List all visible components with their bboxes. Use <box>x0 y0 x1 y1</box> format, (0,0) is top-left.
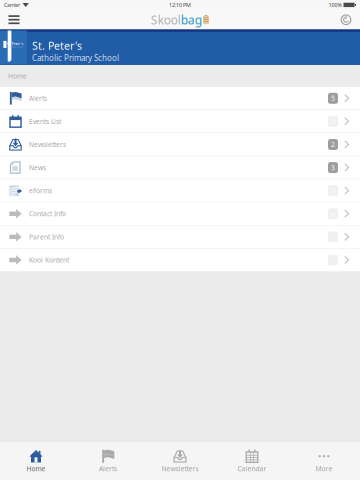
button[interactable]: Home <box>0 442 72 480</box>
button[interactable]: Contact Info <box>0 202 360 225</box>
staticText: 100% <box>328 1 341 9</box>
staticText: Parent Info <box>29 232 64 241</box>
staticText: 12:10 PM <box>169 1 191 9</box>
staticText: More <box>315 464 332 473</box>
staticText: Catholic Primary School <box>32 53 119 63</box>
staticText: Home <box>26 464 45 473</box>
staticText: Carrier <box>4 1 20 9</box>
button[interactable]: Newsletters <box>0 133 360 156</box>
staticText: Alerts <box>99 464 117 473</box>
staticText: St. Peter's <box>32 38 82 53</box>
button[interactable]: Parent Info <box>0 226 360 248</box>
staticText: bag <box>181 12 202 28</box>
staticText: eForms <box>29 186 52 195</box>
button[interactable]: eForms <box>0 179 360 202</box>
button[interactable]: Alerts <box>0 87 360 110</box>
button[interactable]: Newsletters <box>144 442 216 480</box>
button[interactable]: Events List <box>0 110 360 133</box>
button[interactable]: More <box>288 442 360 480</box>
staticText: 2 <box>331 140 335 149</box>
button[interactable]: Menu <box>0 10 28 29</box>
button[interactable]: Refresh <box>332 10 360 29</box>
staticText: 3 <box>331 163 335 172</box>
button[interactable]: Alerts <box>72 442 144 480</box>
button[interactable]: Calendar <box>216 442 288 480</box>
staticText: Calendar <box>237 464 266 473</box>
staticText: Skool <box>151 12 181 28</box>
staticText: Newsletters <box>29 140 66 149</box>
staticText: Alerts <box>29 94 47 103</box>
staticText: 5 <box>331 94 335 103</box>
staticText: Events List <box>29 117 61 126</box>
staticText: News <box>29 163 46 172</box>
button[interactable]: Kool Kontent <box>0 249 360 271</box>
staticText: Home <box>8 72 27 80</box>
staticText: St. Peter's <box>7 41 24 46</box>
button[interactable]: News <box>0 156 360 179</box>
staticText: Kool Kontent <box>29 255 69 264</box>
staticText: Catholic Primary School <box>7 46 23 48</box>
staticText: Contact Info <box>29 209 66 218</box>
staticText: Newsletters <box>161 464 198 473</box>
